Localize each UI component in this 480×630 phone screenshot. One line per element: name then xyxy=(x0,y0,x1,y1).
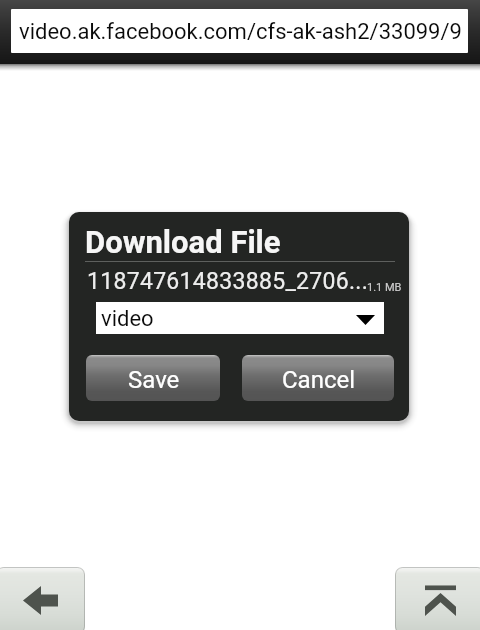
staticText: Cancel xyxy=(282,366,356,394)
staticText: 118747614833885_2706... xyxy=(87,268,369,295)
button[interactable]: video.ak.facebook.com/cfs-ak-ash2/33099/… xyxy=(11,9,468,53)
button[interactable]: Save xyxy=(86,355,220,401)
staticText: video.ak.facebook.com/cfs-ak-ash2/33099/… xyxy=(19,19,462,45)
button[interactable]: video xyxy=(96,302,384,334)
button[interactable]: Back xyxy=(0,567,85,630)
staticText: Download File xyxy=(85,224,281,260)
staticText: 1.1 MB xyxy=(367,281,402,294)
button[interactable]: Scroll to top xyxy=(395,567,480,630)
staticText: Save xyxy=(128,366,180,394)
button[interactable]: Cancel xyxy=(242,355,394,401)
staticText: video xyxy=(101,306,154,332)
